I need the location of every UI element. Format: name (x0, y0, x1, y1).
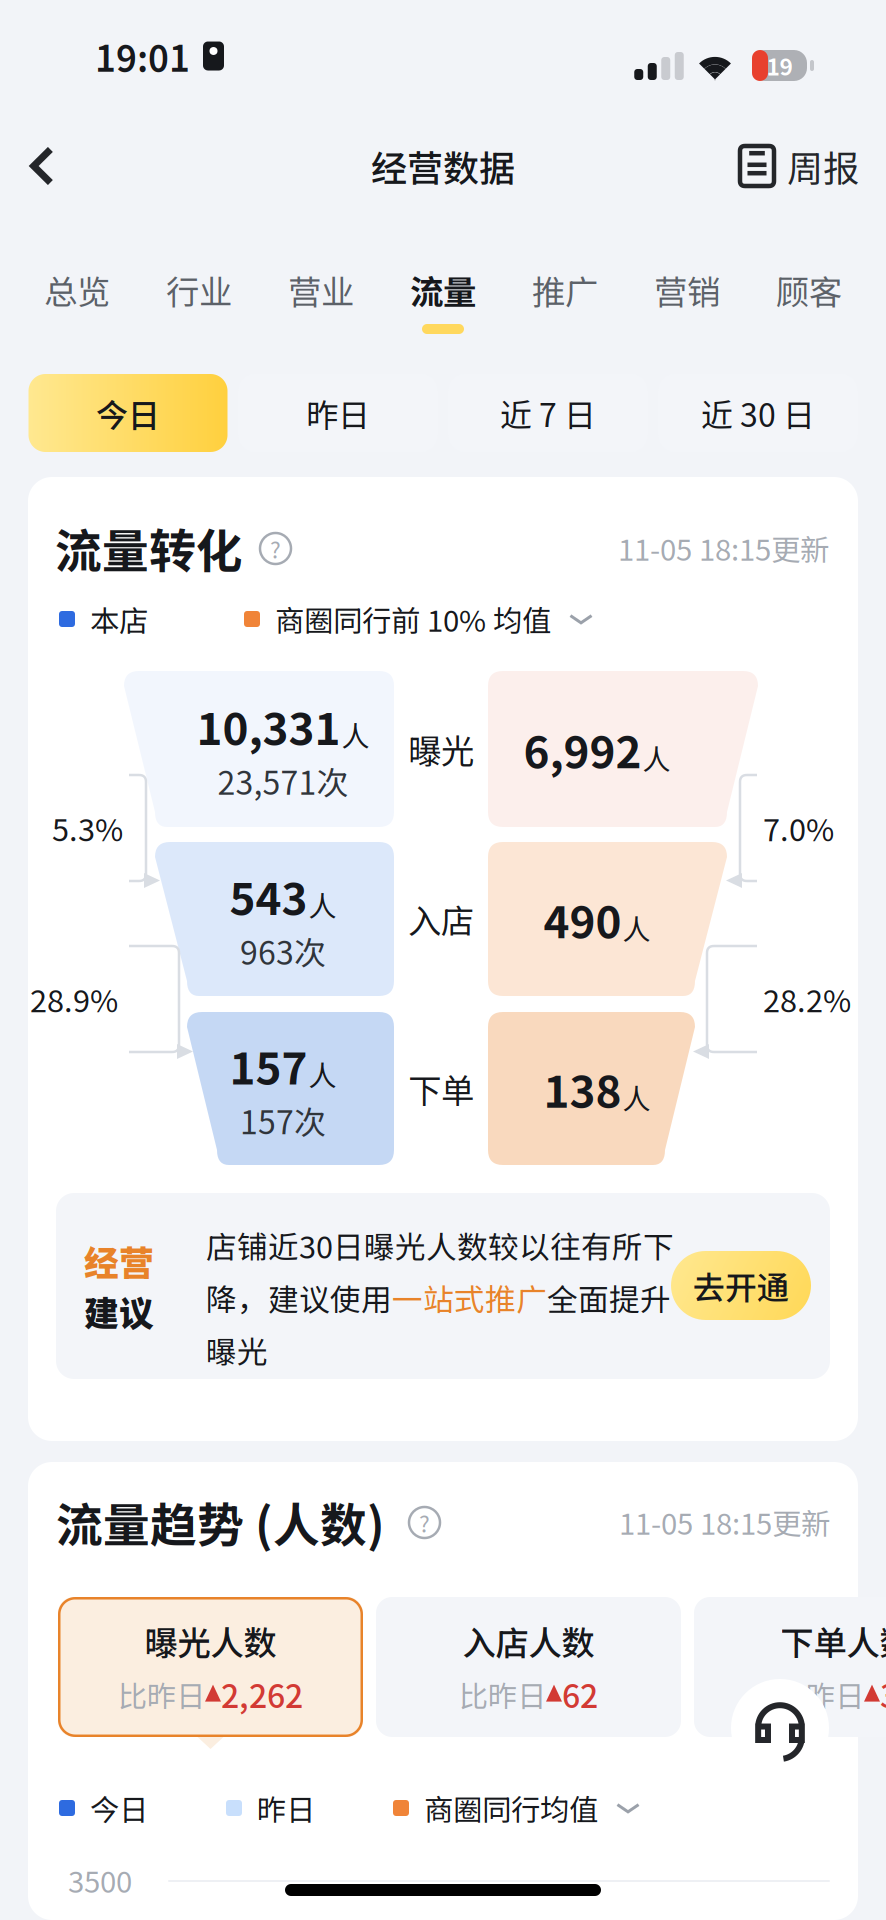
staticText: 人 (642, 737, 670, 778)
staticText: 人 (622, 907, 650, 948)
staticText: 157 (229, 1033, 307, 1097)
button[interactable]: 近 7 日 (448, 374, 647, 452)
staticText: 28.2% (763, 977, 851, 1021)
button[interactable]: 顾客 (748, 262, 870, 358)
button[interactable]: 曝光人数 (58, 1597, 363, 1749)
staticText: 入店 (408, 895, 474, 943)
button[interactable]: 推广 (504, 262, 626, 358)
staticText: 23,571次 (217, 758, 348, 804)
staticText: 营业 (288, 266, 354, 314)
button[interactable]: 下单人数 (694, 1597, 886, 1749)
button[interactable]: 流量 (382, 262, 504, 358)
staticText: 近 7 日 (500, 390, 596, 436)
staticText: 5.3% (52, 806, 123, 850)
button[interactable]: 去开通 (671, 1251, 811, 1320)
button[interactable]: 营业 (260, 262, 382, 358)
staticText: 人 (308, 1054, 336, 1094)
staticText: 经营数据 (371, 140, 515, 192)
staticText: 157次 (240, 1097, 326, 1143)
staticText: 总览 (44, 266, 110, 314)
staticText: 11-05 18:15更新 (619, 1501, 830, 1543)
button[interactable]: 近 30 日 (658, 374, 857, 452)
button[interactable]: 昨日 (238, 374, 437, 452)
staticText: 3500 (68, 1859, 132, 1901)
button[interactable]: 营销 (626, 262, 748, 358)
staticText: 推广 (532, 266, 598, 314)
staticText: 经营 (84, 1236, 154, 1286)
staticText: 10,331 (196, 694, 340, 758)
staticText: 543 (229, 864, 307, 928)
staticText: 19 (766, 49, 792, 82)
staticText: 昨日 (257, 1787, 315, 1829)
staticText: 营销 (654, 266, 720, 314)
staticText: 周报 (787, 140, 859, 192)
staticText: 曝光 (206, 1328, 268, 1372)
staticText: ? (419, 1506, 430, 1539)
staticText: 去开通 (693, 1262, 789, 1309)
button[interactable]: 行业 (138, 262, 260, 358)
button[interactable]: 入店人数 (376, 1597, 681, 1749)
staticText: 11-05 18:15更新 (618, 527, 829, 569)
staticText: ? (270, 532, 281, 565)
staticText: 比昨日 (459, 1673, 546, 1715)
staticText: 本店 (90, 598, 148, 640)
button[interactable]: 返回 (0, 112, 84, 220)
staticText: 顾客 (776, 266, 842, 314)
button[interactable]: 在线客服 (731, 1679, 829, 1777)
staticText: 近 30 日 (701, 390, 815, 436)
staticText: 一站式推广 (392, 1275, 547, 1320)
staticText: 商圈同行前 10% 均值 (275, 598, 551, 640)
staticText: 曝光人数 (144, 1617, 276, 1665)
staticText: 比昨日 (118, 1673, 205, 1715)
button[interactable]: 周报 (740, 112, 886, 220)
staticText: 昨日 (306, 390, 370, 436)
staticText: 今日 (90, 1787, 148, 1829)
staticText: 入店人数 (462, 1617, 594, 1665)
staticText: 下单人数 (780, 1617, 886, 1665)
staticText: 曝光 (408, 725, 474, 773)
staticText: 人 (308, 884, 336, 925)
staticText: 138 (543, 1057, 621, 1120)
staticText: 今日 (96, 390, 160, 436)
staticText: 31 (880, 1671, 886, 1717)
staticText: 建议 (84, 1286, 154, 1336)
staticText: 流量转化 (55, 514, 243, 582)
staticText: 店铺近30日曝光人数较以往有所下 (206, 1223, 674, 1267)
button[interactable]: 总览 (16, 262, 138, 358)
staticText: 28.9% (30, 977, 118, 1021)
button[interactable]: 今日 (28, 374, 227, 452)
staticText: 流量 (410, 266, 476, 314)
staticText: 2,262 (221, 1671, 303, 1717)
staticText: 商圈同行均值 (424, 1787, 598, 1829)
staticText: 降，建议使用 (206, 1275, 392, 1320)
staticText: 6,992 (523, 717, 641, 781)
staticText: 490 (543, 887, 621, 951)
staticText: 62 (562, 1671, 598, 1717)
staticText: 963次 (240, 928, 326, 974)
staticText: 人 (341, 714, 369, 755)
staticText: 全面提升 (547, 1275, 671, 1320)
staticText: 7.0% (763, 806, 834, 850)
staticText: 下单 (408, 1064, 474, 1113)
staticText: 人 (622, 1077, 650, 1117)
staticText: 行业 (166, 266, 232, 314)
staticText: 比昨日 (777, 1673, 864, 1715)
staticText: 流量趋势 (人数) (56, 1488, 385, 1556)
staticText: 19:01 (95, 30, 190, 82)
